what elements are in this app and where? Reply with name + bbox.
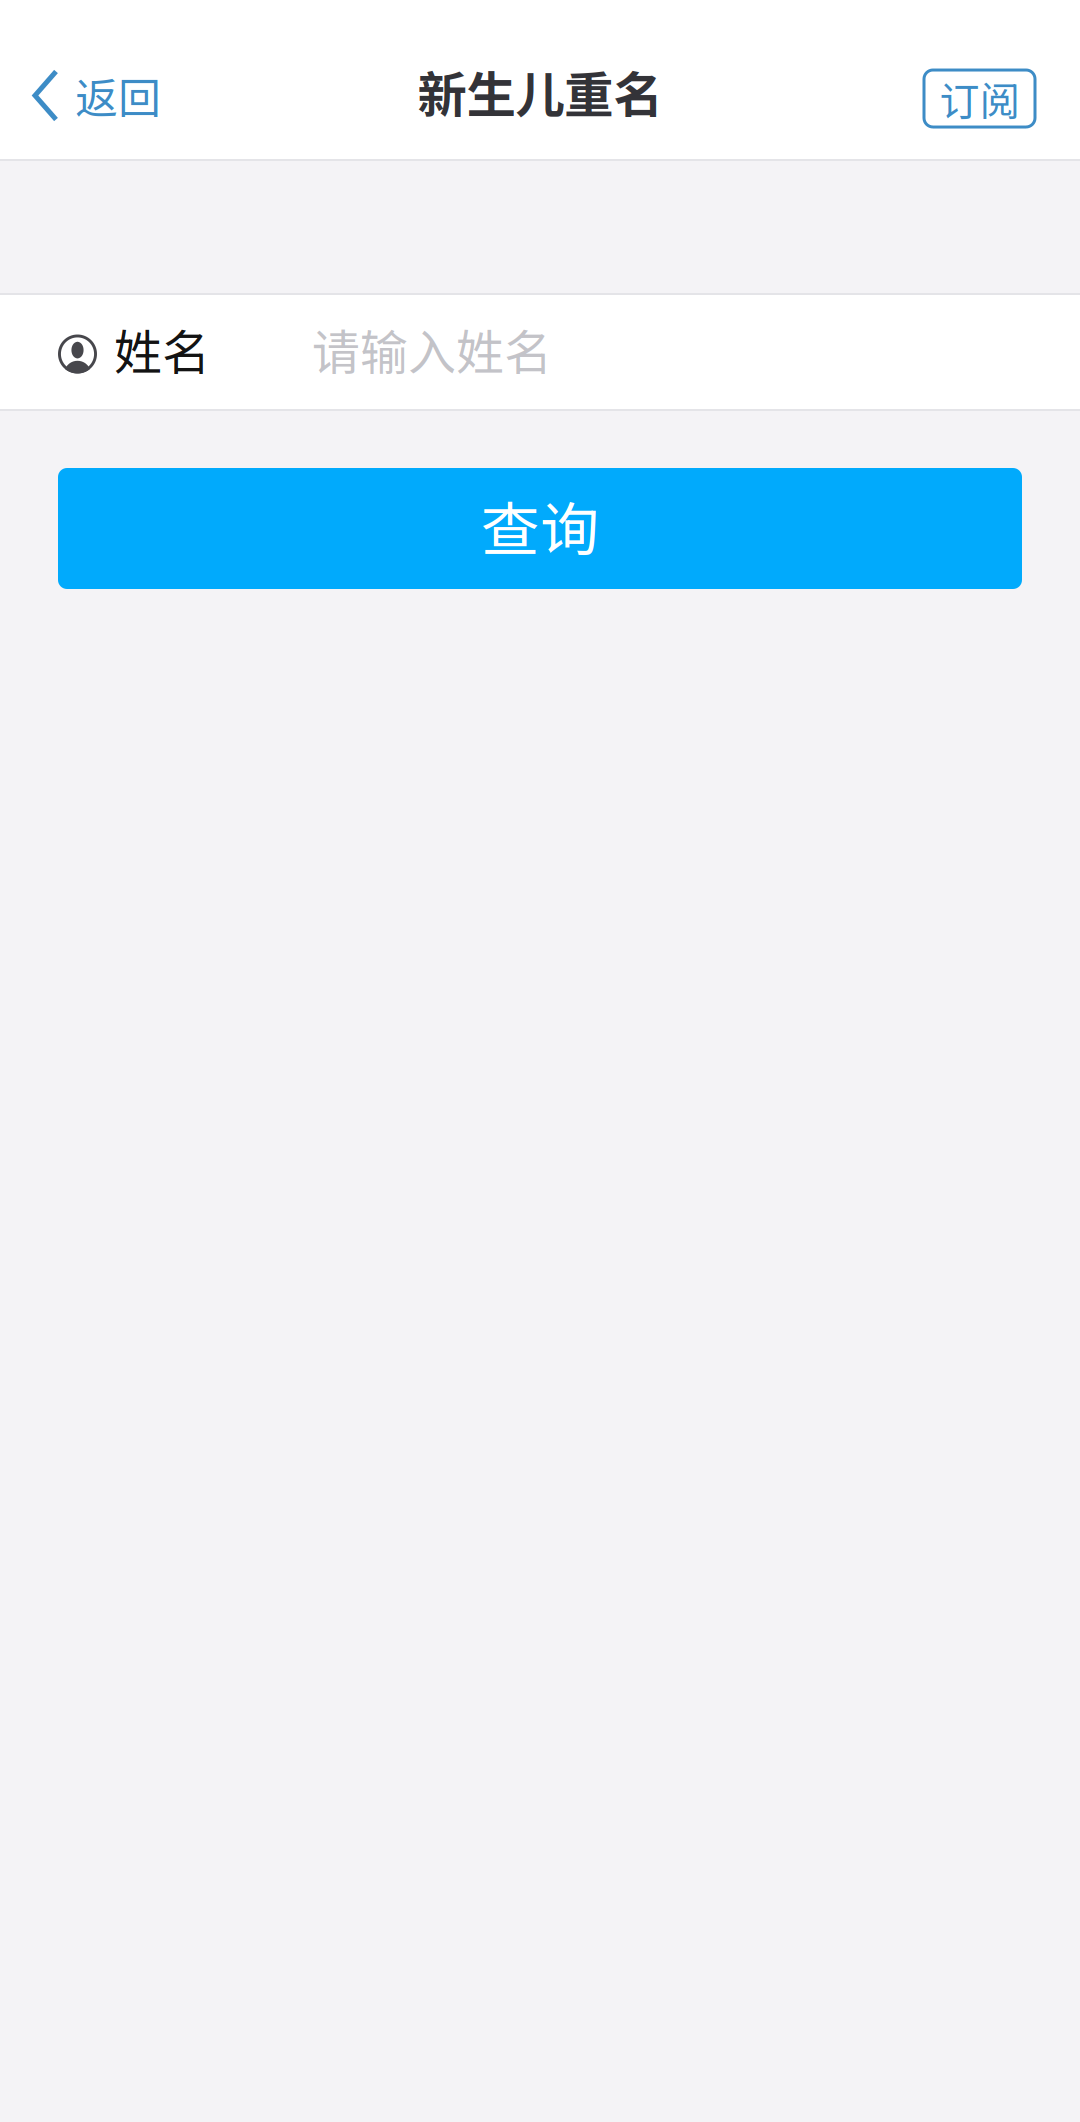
button[interactable]: 订阅: [924, 70, 1035, 127]
staticText: 订阅: [939, 69, 1019, 127]
button[interactable]: 姓名: [0, 293, 1080, 411]
staticText: 新生儿重名: [417, 56, 662, 127]
button[interactable]: 查询: [58, 468, 1022, 589]
staticText: 查询: [481, 483, 599, 568]
staticText: 返回: [75, 65, 161, 126]
staticText: 姓名: [114, 314, 210, 384]
button[interactable]: 返回: [0, 31, 187, 159]
staticText: 请输入姓名: [312, 314, 552, 384]
